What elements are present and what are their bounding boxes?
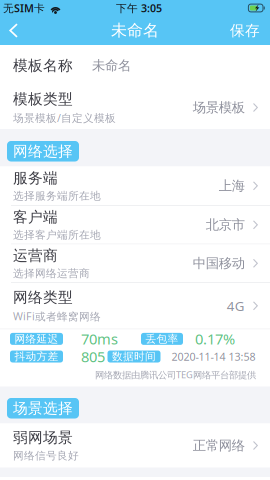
button[interactable]: 弱网场景 (0, 423, 270, 467)
button[interactable]: 服务端 (0, 166, 270, 205)
staticText: 中国移动 (193, 255, 245, 271)
button[interactable]: 客户端 (0, 206, 270, 244)
staticText: 805 (81, 347, 105, 366)
staticText: WiFi或者蜂窝网络 (13, 309, 101, 323)
staticText: 70ms (81, 329, 118, 349)
button[interactable]: 保存 (218, 16, 270, 45)
button[interactable]: 运营商 (0, 244, 270, 282)
staticText: 运营商 (13, 246, 58, 264)
staticText: 网络类型 (13, 288, 73, 306)
button[interactable]: 返回 (0, 16, 30, 45)
staticText: 场景选择 (13, 399, 73, 417)
staticText: 未命名 (111, 21, 159, 40)
staticText: 选择网络运营商 (13, 267, 90, 280)
staticText: 弱网场景 (13, 429, 73, 447)
staticText: 0.17% (195, 329, 235, 349)
staticText: 未命名 (92, 57, 131, 74)
staticText: 抖动方差 (14, 350, 58, 363)
button[interactable]: 模板名称 (0, 45, 270, 86)
staticText: 模板名称 (13, 56, 73, 74)
staticText: 模板类型 (13, 90, 73, 108)
staticText: 2020-11-14 13:58 (171, 349, 255, 364)
staticText: 网络数据由腾讯公司TEG网络平台部提供 (95, 368, 256, 381)
staticText: 网络选择 (13, 142, 73, 160)
staticText: 选择服务端所在地 (13, 189, 101, 203)
staticText: 数据时间 (112, 350, 156, 363)
button[interactable]: 模板类型 (0, 86, 270, 129)
staticText: 北京市 (206, 217, 245, 233)
staticText: 网络延迟 (14, 332, 58, 345)
staticText: 选择客户端所在地 (13, 228, 101, 242)
staticText: 无SIM卡 (3, 1, 45, 15)
staticText: 客户端 (13, 208, 58, 226)
staticText: 保存 (230, 21, 260, 39)
staticText: 下午 3:05 (116, 1, 162, 15)
button[interactable]: 网络类型 (0, 283, 270, 329)
staticText: 4G (227, 297, 245, 315)
staticText: 服务端 (13, 169, 58, 187)
staticText: 正常网络 (193, 437, 245, 454)
staticText: 上海 (219, 178, 245, 194)
staticText: 场景模板 (193, 99, 245, 116)
staticText: 场景模板/自定义模板 (13, 111, 116, 125)
staticText: 网络信号良好 (13, 449, 79, 462)
staticText: 丢包率 (145, 332, 178, 345)
